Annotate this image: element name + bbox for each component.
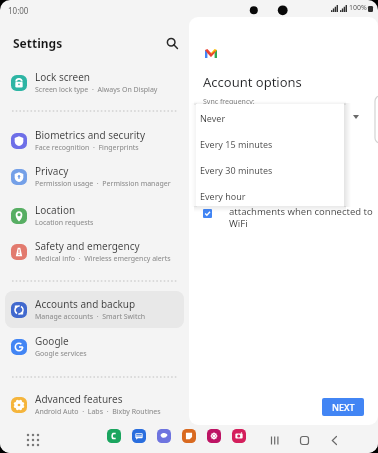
staticText: Never (200, 112, 226, 124)
button[interactable]: Recents (266, 432, 282, 448)
button[interactable]: Messages (132, 429, 146, 443)
button[interactable]: Lock screen (5, 64, 184, 101)
staticText: Lock screen (35, 70, 91, 84)
staticText: Permission usage · Permission manager (35, 179, 171, 189)
button[interactable]: Biometrics and security (5, 122, 184, 159)
button[interactable]: Location (5, 197, 184, 234)
button[interactable]: Every 15 minutes (196, 131, 344, 157)
button[interactable]: Every hour (196, 183, 344, 209)
button[interactable]: Privacy (5, 158, 184, 195)
button[interactable]: Phone (107, 429, 121, 443)
button[interactable]: Back (326, 432, 342, 448)
staticText: Sync frequency: (203, 97, 255, 107)
staticText: Location (35, 203, 76, 217)
button[interactable]: Internet (157, 429, 171, 443)
button[interactable]: Accounts and backup (5, 291, 184, 328)
button[interactable]: Gallery (207, 429, 221, 443)
staticText: Biometrics and security (35, 128, 145, 142)
staticText: Google (35, 334, 69, 348)
staticText: Accounts and backup (35, 297, 136, 311)
staticText: Privacy (35, 164, 69, 178)
button[interactable]: Search (160, 31, 184, 55)
staticText: Advanced features (35, 392, 123, 406)
button[interactable]: Advanced features (5, 386, 184, 423)
staticText: Account options (203, 73, 302, 91)
button[interactable]: attachments when connected to WiFi (201, 205, 376, 231)
staticText: 100% (349, 3, 367, 13)
staticText: NEXT (332, 401, 355, 413)
button[interactable]: Home (296, 432, 312, 448)
button[interactable]: Camera (232, 429, 246, 443)
button[interactable]: Notes (182, 429, 196, 443)
staticText: Manage accounts · Smart Switch (35, 312, 146, 322)
button[interactable]: Every 30 minutes (196, 157, 344, 183)
button[interactable]: Apps (24, 431, 40, 447)
staticText: 10:00 (8, 5, 29, 16)
button[interactable]: Never (196, 105, 344, 131)
staticText: Safety and emergency (35, 239, 140, 253)
staticText: Android Auto · Labs · Bixby Routines (35, 407, 161, 417)
staticText: Google services (35, 349, 87, 359)
staticText: attachments when connected to WiFi (229, 205, 373, 229)
staticText: Every hour (200, 190, 246, 202)
button[interactable]: Safety and emergency (5, 233, 184, 270)
button[interactable]: NEXT (322, 398, 364, 416)
staticText: Screen lock type · Always On Display (35, 85, 158, 95)
staticText: Medical info · Wireless emergency alerts (35, 254, 171, 264)
staticText: Every 15 minutes (200, 138, 273, 150)
button[interactable]: Google (5, 328, 184, 365)
staticText: Every 30 minutes (200, 164, 273, 176)
staticText: Face recognition · Fingerprints (35, 143, 139, 153)
staticText: Settings (13, 35, 63, 51)
staticText: Location requests (35, 218, 94, 228)
